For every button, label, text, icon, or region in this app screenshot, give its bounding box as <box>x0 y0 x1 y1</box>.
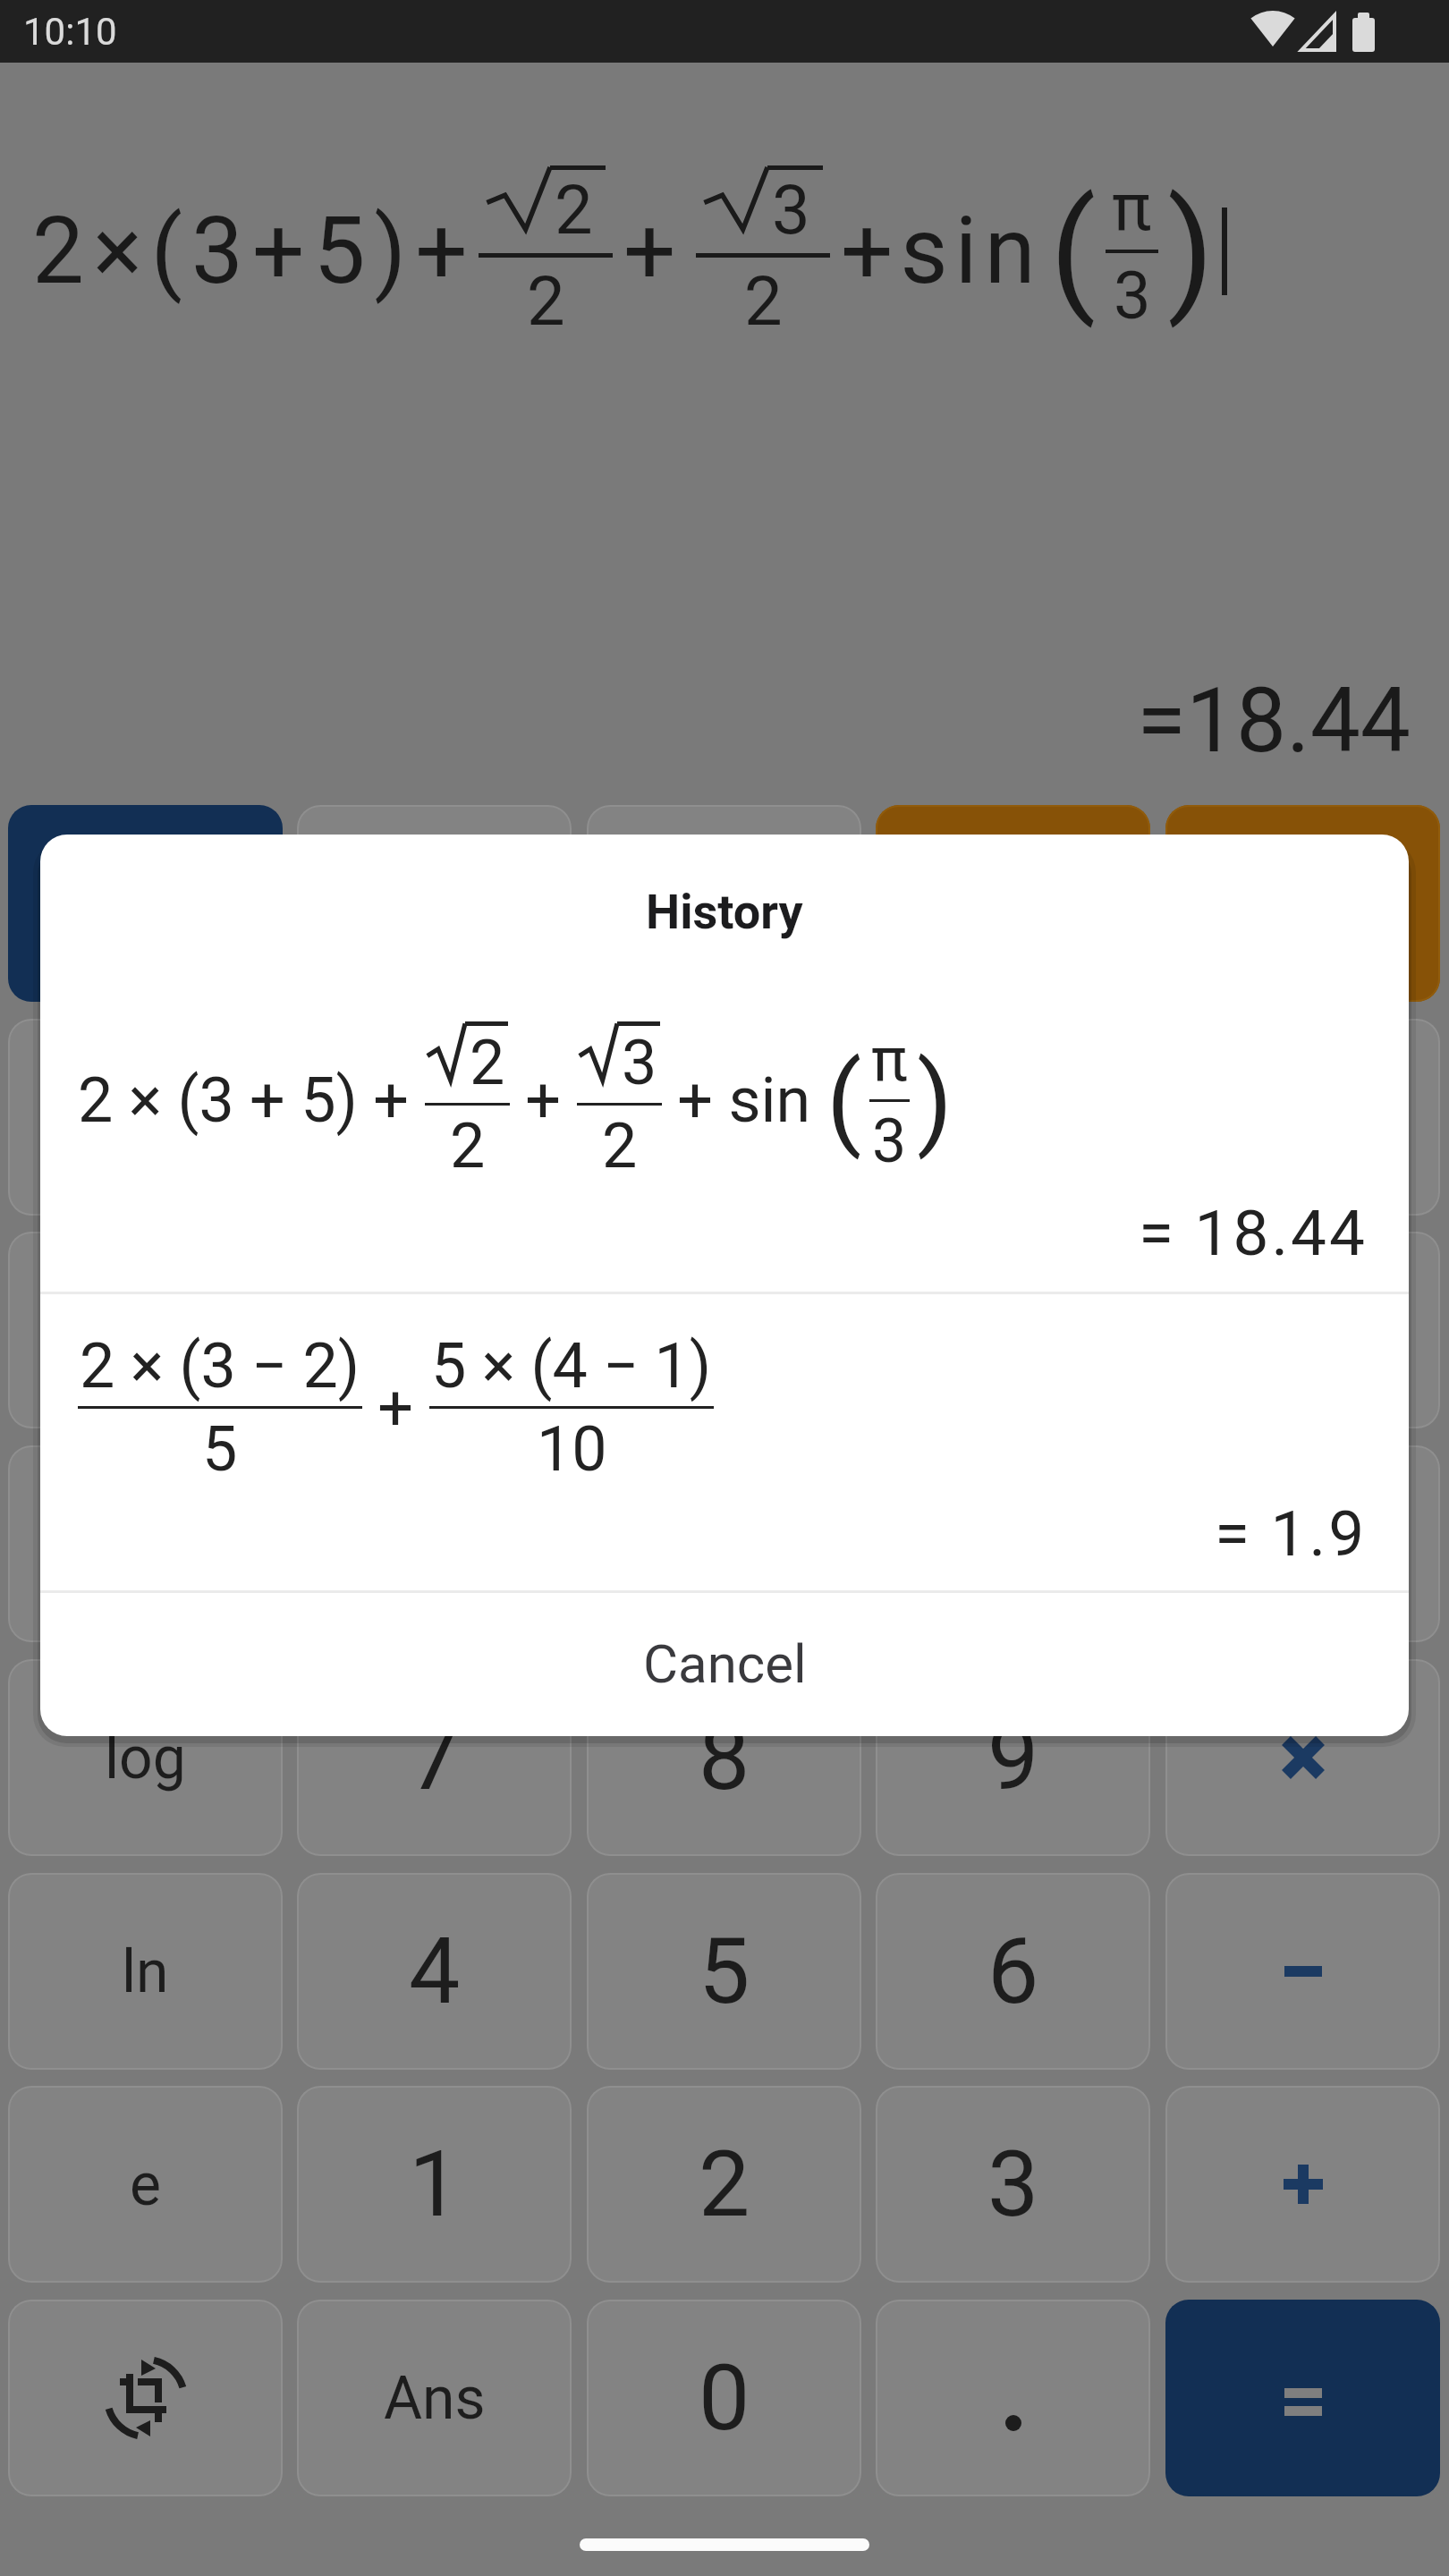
staticText: 8 <box>699 1704 750 1811</box>
button[interactable]: 1 <box>297 2086 572 2283</box>
staticText: Ans <box>384 2364 486 2433</box>
button[interactable] <box>8 1445 283 1642</box>
staticText: 3 <box>872 1106 907 1177</box>
button[interactable] <box>876 1019 1150 1216</box>
button[interactable] <box>587 1445 861 1642</box>
staticText: 7 <box>409 1704 461 1811</box>
staticText: 3 <box>772 170 810 250</box>
button[interactable]: 2 × (3 + 5) + <box>40 988 1409 1212</box>
button[interactable]: log <box>8 1659 283 1856</box>
staticText: =18.44 <box>1137 668 1411 773</box>
button[interactable] <box>1165 1019 1440 1216</box>
staticText: ) <box>1167 173 1215 330</box>
staticText: 2 <box>744 261 783 341</box>
button[interactable] <box>1165 1445 1440 1642</box>
button[interactable]: 8 <box>587 1659 861 1856</box>
staticText: 9 <box>987 1704 1039 1811</box>
button[interactable] <box>1165 1659 1440 1856</box>
staticText: 6 <box>987 1918 1039 2025</box>
button[interactable] <box>1165 2300 1440 2496</box>
button[interactable]: e <box>8 2086 283 2283</box>
staticText: = 1.9 <box>1215 1496 1368 1571</box>
button[interactable] <box>1165 805 1440 1002</box>
button[interactable] <box>297 805 572 1002</box>
staticText: History <box>646 884 803 940</box>
button[interactable] <box>1165 1232 1440 1428</box>
staticText: ( <box>826 1040 862 1161</box>
staticText: 2 × (3 + 5) + <box>78 1063 425 1137</box>
button[interactable] <box>876 2300 1150 2496</box>
staticText: 5 <box>699 1918 750 2025</box>
staticText: 2×(3+5)+ <box>32 197 477 305</box>
button[interactable]: 4 <box>297 1873 572 2070</box>
button[interactable]: 2 <box>587 2086 861 2283</box>
button[interactable]: 3 <box>876 2086 1150 2283</box>
staticText: 2 <box>470 1026 505 1099</box>
staticText: + <box>623 197 676 305</box>
staticText: e <box>130 2150 161 2219</box>
staticText: 2 <box>602 1109 638 1182</box>
staticText: 3 <box>1114 257 1151 335</box>
button[interactable]: Cancel <box>40 1606 1409 1722</box>
staticText: + <box>362 1371 429 1445</box>
staticText: 3 <box>622 1026 657 1099</box>
staticText: 1 <box>409 2131 461 2238</box>
button[interactable] <box>587 1019 861 1216</box>
button[interactable]: Ans <box>297 2300 572 2496</box>
staticText: log <box>105 1724 186 1792</box>
button[interactable] <box>8 805 283 1002</box>
staticText: ) <box>917 1040 953 1161</box>
staticText: 2 <box>450 1109 486 1182</box>
button[interactable]: 7 <box>297 1659 572 1856</box>
button[interactable] <box>297 1445 572 1642</box>
staticText: ln <box>122 1937 169 2006</box>
staticText: 2 <box>527 261 565 341</box>
staticText: +sin <box>841 197 1043 305</box>
staticText: 10 <box>537 1412 607 1486</box>
button[interactable]: 9 <box>876 1659 1150 1856</box>
staticText: 5 <box>202 1412 238 1486</box>
staticText: + sin <box>662 1063 826 1137</box>
staticText: Cancel <box>643 1632 807 1695</box>
staticText: 3 <box>987 2131 1039 2238</box>
button[interactable] <box>8 1232 283 1428</box>
button[interactable] <box>876 1232 1150 1428</box>
button[interactable] <box>876 805 1150 1002</box>
staticText: 0 <box>699 2344 750 2452</box>
staticText: = 18.44 <box>1139 1196 1368 1270</box>
button[interactable] <box>1165 1873 1440 2070</box>
button[interactable] <box>587 1232 861 1428</box>
button[interactable] <box>297 1232 572 1428</box>
button[interactable] <box>8 2300 283 2496</box>
button[interactable] <box>1165 2086 1440 2283</box>
staticText: π <box>1112 168 1152 246</box>
button[interactable] <box>297 1019 572 1216</box>
button[interactable]: 5 <box>587 1873 861 2070</box>
staticText: 5 × (4 − 1) <box>431 1329 712 1402</box>
staticText: + <box>510 1063 577 1137</box>
staticText: π <box>871 1024 908 1096</box>
button[interactable]: 0 <box>587 2300 861 2496</box>
button[interactable]: ln <box>8 1873 283 2070</box>
staticText: 2 × (3 − 2) <box>80 1329 360 1402</box>
staticText: 4 <box>409 1918 461 2025</box>
staticText: 2 <box>699 2131 750 2238</box>
button[interactable] <box>587 805 861 1002</box>
staticText: 10:10 <box>23 10 117 54</box>
button[interactable]: 6 <box>876 1873 1150 2070</box>
staticText: ( <box>1050 173 1097 330</box>
button[interactable] <box>8 1019 283 1216</box>
staticText: 2 <box>555 170 593 250</box>
button[interactable]: 2 × (3 − 2) <box>40 1318 1409 1496</box>
